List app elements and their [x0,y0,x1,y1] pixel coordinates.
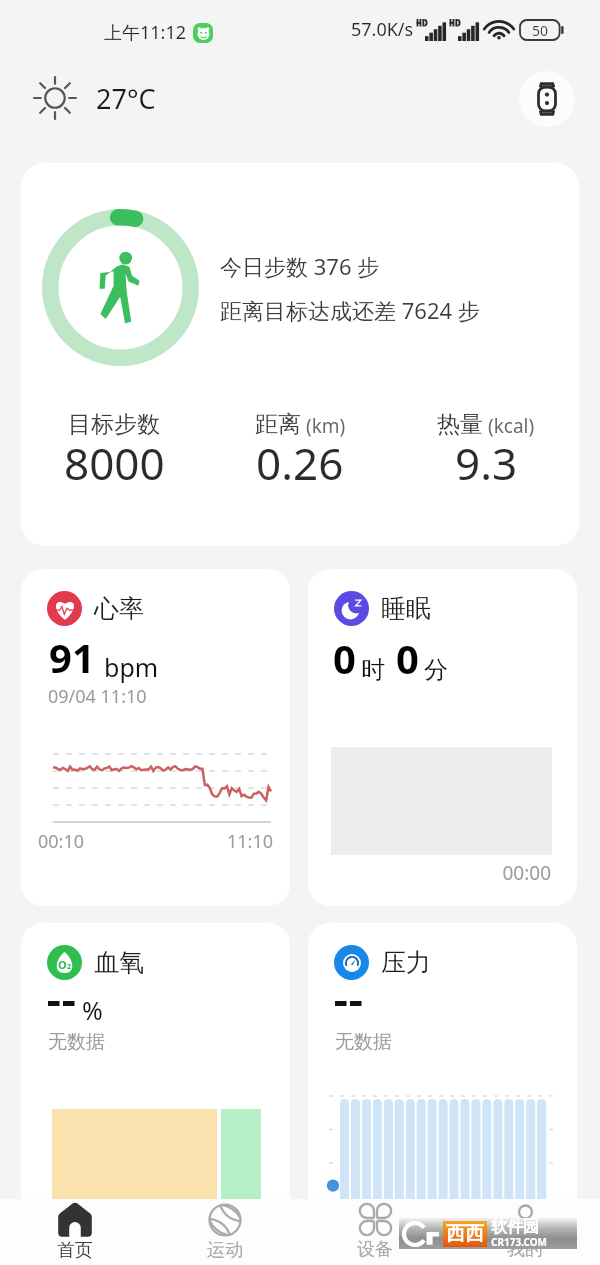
staticText: 距离 [255,410,301,439]
staticText: 压力 [381,947,431,978]
staticText: 设备 [357,1238,393,1261]
staticText: 今日步数 376 步 [220,251,380,281]
staticText: 0 [333,631,356,685]
staticText: 11:10 [21,829,273,854]
staticText: 00:00 [308,860,551,886]
staticText: 0 [396,631,419,685]
button[interactable]: O [21,923,290,1260]
staticText: 我的 [507,1238,543,1261]
staticText: CR173.COM [491,1235,548,1246]
button[interactable]: 我的 [450,1199,600,1265]
staticText: 首页 [57,1239,93,1262]
button[interactable]: 设备 [300,1199,450,1265]
staticText: 27°C [96,80,156,117]
staticText: bpm [104,650,159,684]
button[interactable]: 首页 [0,1199,150,1265]
staticText: 无数据 [48,1030,105,1054]
staticText: 距离目标达成还差 7624 步 [220,295,480,325]
button[interactable]: 今日步数 376 步 [21,163,579,546]
staticText: 00:10 [38,829,85,854]
staticText: 2 [67,962,72,972]
staticText: 睡眠 [381,593,431,624]
staticText: 血氧 [94,947,144,978]
button[interactable]: My band [519,71,575,127]
staticText: (kcal) [483,413,535,439]
button[interactable]: 心率 [21,569,290,906]
staticText: 分 [424,655,448,685]
staticText: 心率 [94,593,144,624]
staticText: 9.3 [455,433,518,493]
staticText: 上午11:12 [104,20,187,45]
button[interactable]: 27°C [30,73,156,123]
staticText: 软件园 [491,1217,539,1237]
staticText: 50 [532,21,549,40]
staticText: 09/04 11:10 [48,684,147,709]
staticText: 运动 [207,1239,243,1262]
staticText: 目标步数 [68,410,160,439]
staticText: O [58,957,67,972]
button[interactable]: 压力 [308,923,577,1260]
button[interactable]: 睡眠 [308,569,577,906]
staticText: 西西 [446,1222,484,1246]
staticText: 57.0K/s [351,17,414,42]
staticText: 热量 [437,410,483,439]
staticText: 0.26 [256,433,344,493]
staticText: 8000 [64,433,165,493]
staticText: (km) [301,413,346,439]
button[interactable]: 运动 [150,1199,300,1265]
staticText: 无数据 [335,1030,392,1054]
staticText: % [82,993,103,1027]
staticText: 91 [49,630,95,684]
staticText: 时 [361,655,385,685]
